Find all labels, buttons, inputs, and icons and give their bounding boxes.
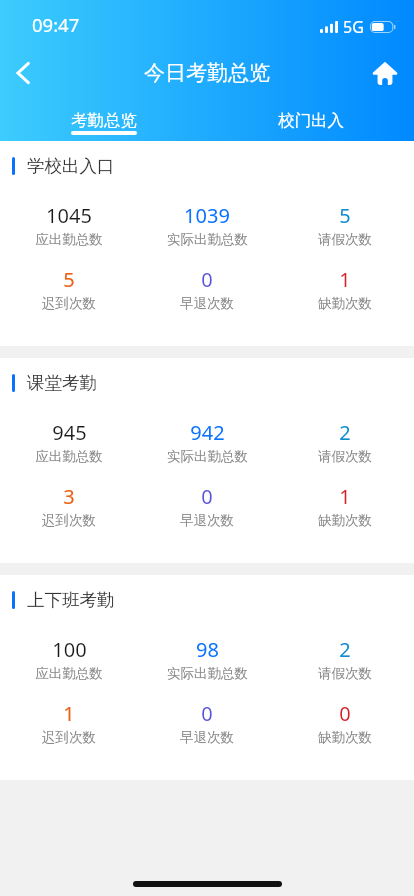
staticText: 课堂考勤 [27,372,97,394]
staticText: 应出勤总数 [35,231,103,248]
button[interactable]: 100 [0,636,138,682]
staticText: 请假次数 [318,448,372,465]
staticText: 1 [63,700,75,727]
staticText: 应出勤总数 [35,665,103,682]
staticText: 应出勤总数 [35,448,103,465]
button[interactable]: 942 [138,419,276,465]
staticText: 1 [339,483,351,510]
button[interactable]: 1045 [0,202,138,248]
staticText: 迟到次数 [42,295,96,312]
staticText: 今日考勤总览 [144,60,270,86]
staticText: 迟到次数 [42,729,96,746]
staticText: 0 [339,700,351,727]
button[interactable]: 5 [276,202,414,248]
staticText: 请假次数 [318,665,372,682]
button[interactable]: 945 [0,419,138,465]
staticText: 缺勤次数 [318,729,372,746]
button[interactable]: 1 [0,700,138,746]
button[interactable]: Back [0,50,46,96]
staticText: 945 [52,419,87,446]
staticText: 2 [339,636,351,663]
staticText: 1045 [46,202,92,229]
button[interactable]: 2 [276,419,414,465]
button[interactable]: 校门出入 [207,99,414,141]
staticText: 3 [63,483,75,510]
button[interactable]: 1039 [138,202,276,248]
staticText: 1039 [184,202,230,229]
button[interactable]: 5 [0,266,138,312]
staticText: 实际出勤总数 [167,665,248,682]
staticText: 0 [201,266,213,293]
staticText: 942 [190,419,225,446]
staticText: 09:47 [32,12,80,37]
staticText: 缺勤次数 [318,295,372,312]
staticText: 上下班考勤 [27,589,115,611]
staticText: 100 [52,636,87,663]
staticText: 实际出勤总数 [167,448,248,465]
button[interactable]: 0 [138,483,276,529]
staticText: 早退次数 [180,295,234,312]
staticText: 请假次数 [318,231,372,248]
button[interactable]: Home [365,53,405,93]
button[interactable]: 2 [276,636,414,682]
button[interactable]: 98 [138,636,276,682]
button[interactable]: 考勤总览 [0,99,207,141]
staticText: 5G [343,16,364,38]
staticText: 5 [63,266,75,293]
staticText: 迟到次数 [42,512,96,529]
button[interactable]: 1 [276,266,414,312]
staticText: 早退次数 [180,512,234,529]
staticText: 实际出勤总数 [167,231,248,248]
staticText: 缺勤次数 [318,512,372,529]
button[interactable]: 0 [138,266,276,312]
staticText: 0 [201,700,213,727]
staticText: 2 [339,419,351,446]
button[interactable]: 3 [0,483,138,529]
button[interactable]: 1 [276,483,414,529]
staticText: 1 [339,266,351,293]
staticText: 校门出入 [278,110,344,131]
staticText: 早退次数 [180,729,234,746]
staticText: 98 [196,636,219,663]
staticText: 5 [339,202,351,229]
button[interactable]: 0 [138,700,276,746]
staticText: 0 [201,483,213,510]
staticText: 考勤总览 [71,110,137,131]
staticText: 学校出入口 [27,155,115,177]
button[interactable]: 0 [276,700,414,746]
